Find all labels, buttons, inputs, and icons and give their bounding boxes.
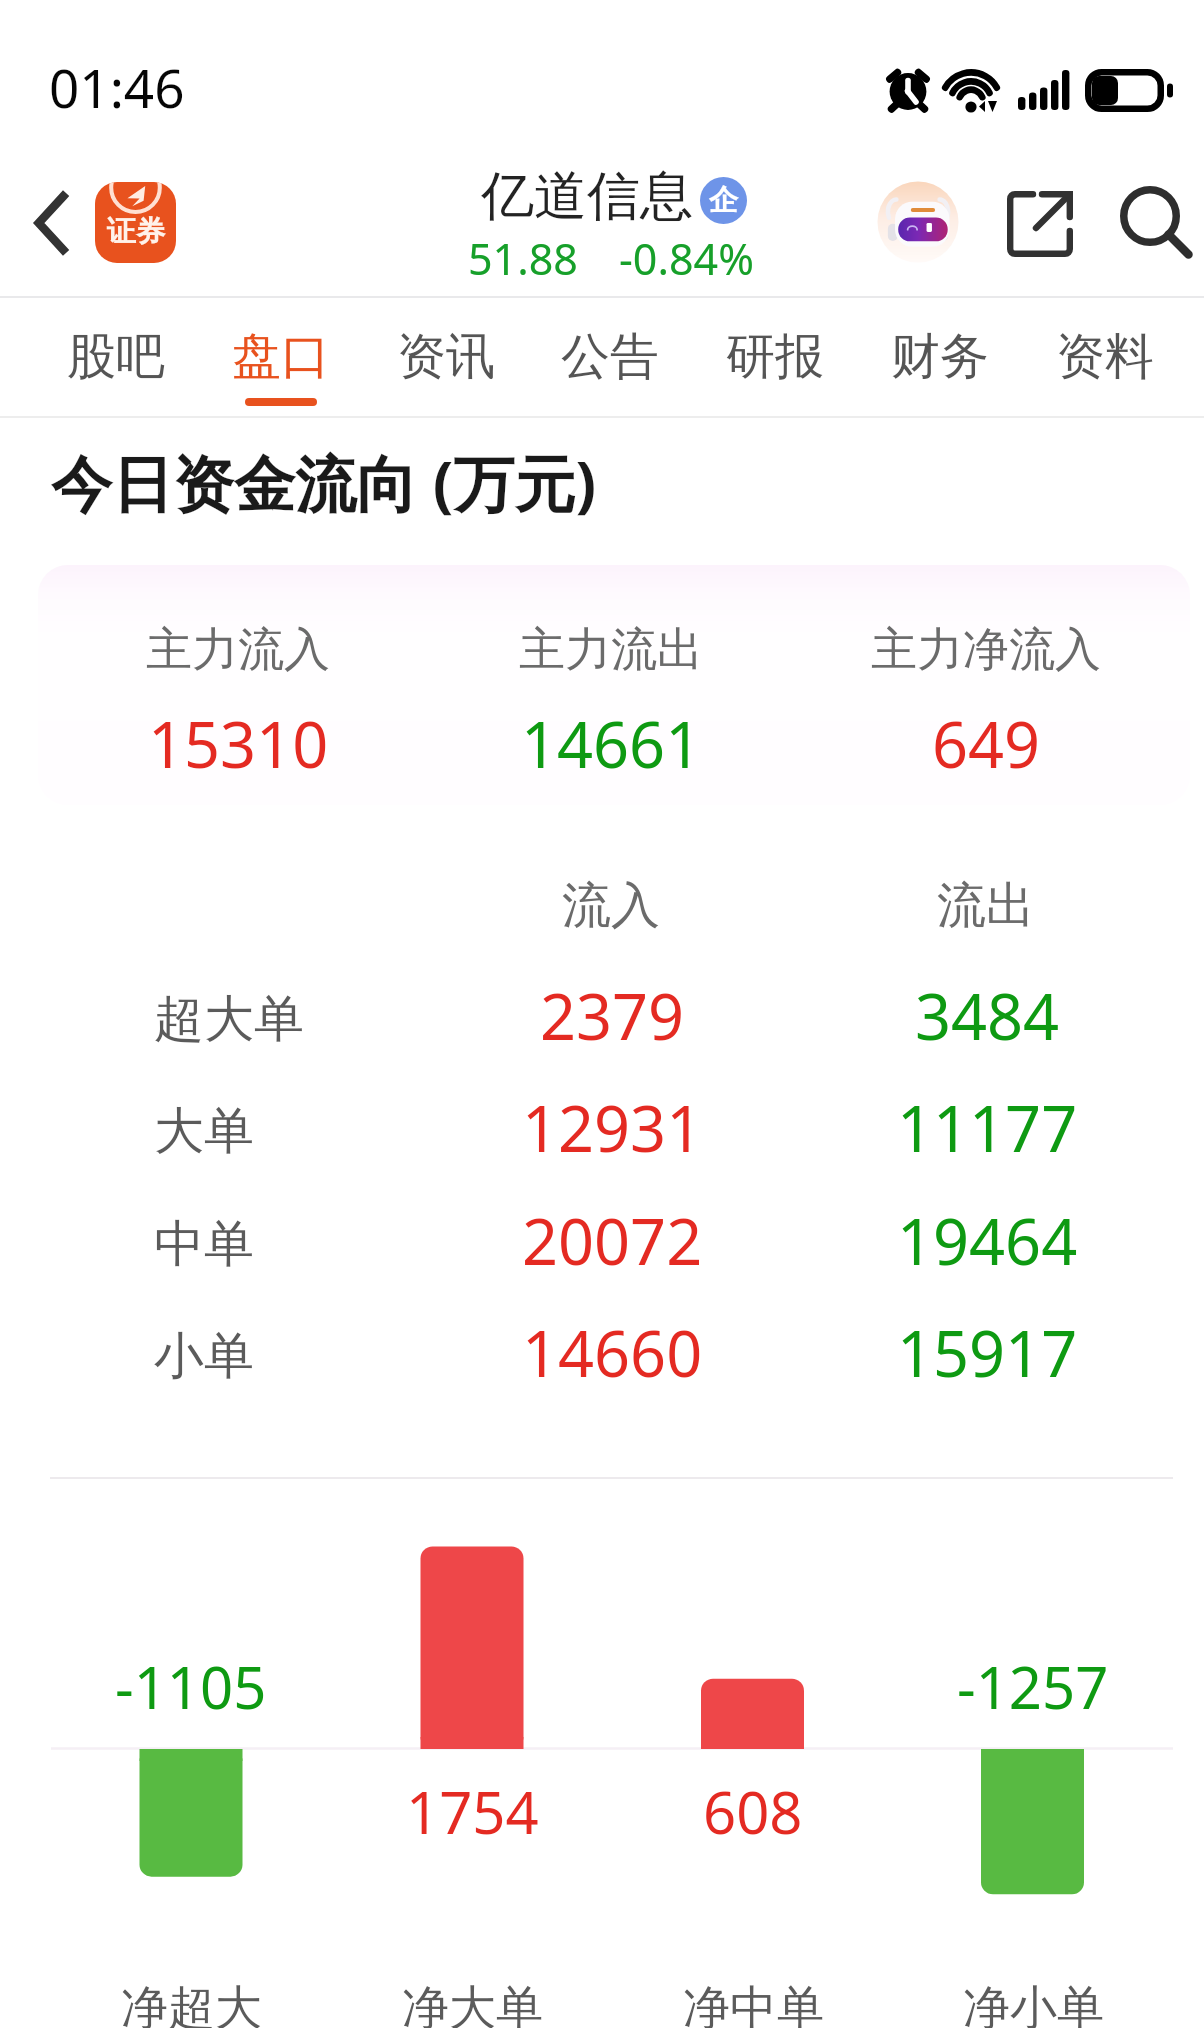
staticText: -1257: [957, 1647, 1109, 1726]
staticText: 649: [932, 701, 1041, 787]
button[interactable]: 资料: [1033, 292, 1177, 414]
staticText: 608: [703, 1772, 803, 1851]
staticText: 3484: [915, 973, 1060, 1059]
staticText: 2379: [540, 973, 685, 1059]
staticText: 主力流出: [519, 621, 703, 679]
staticText: 14660: [522, 1310, 703, 1396]
staticText: -1105: [115, 1647, 267, 1726]
staticText: 15310: [148, 701, 329, 787]
staticText: 盘口: [232, 326, 330, 388]
staticText: 中单: [154, 1213, 254, 1276]
staticText: 12931: [522, 1085, 703, 1171]
button[interactable]: 股吧: [44, 292, 188, 414]
staticText: 净中单: [683, 1979, 824, 2028]
staticText: 资料: [1056, 326, 1154, 388]
button[interactable]: 小单: [0, 1319, 1204, 1431]
button[interactable]: 中单: [0, 1207, 1204, 1319]
staticText: -0.84%: [619, 229, 754, 288]
staticText: 11177: [897, 1085, 1078, 1171]
button[interactable]: 盘口: [209, 292, 353, 414]
staticText: 14661: [521, 701, 702, 787]
staticText: 流出: [937, 875, 1035, 937]
staticText: 净超大: [121, 1979, 262, 2028]
button[interactable]: 资讯: [374, 292, 518, 414]
staticText: 主力净流入: [871, 621, 1101, 679]
staticText: 公告: [561, 326, 659, 388]
staticText: 净小单: [963, 1979, 1104, 2028]
button[interactable]: 研报: [703, 292, 847, 414]
button[interactable]: 公告: [538, 292, 682, 414]
staticText: 亿道信息: [481, 163, 693, 230]
staticText: 1754: [406, 1772, 539, 1851]
staticText: 大单: [154, 1100, 254, 1163]
staticText: 19464: [897, 1198, 1078, 1284]
button[interactable]: 超大单: [0, 982, 1204, 1094]
button[interactable]: Back: [6, 178, 96, 268]
staticText: 财务: [891, 326, 989, 388]
staticText: 今日资金流向 (万元): [51, 441, 597, 524]
staticText: 流入: [562, 875, 660, 937]
staticText: 企: [709, 182, 738, 219]
staticText: 资讯: [397, 326, 495, 388]
button[interactable]: Search: [1111, 177, 1203, 269]
staticText: 超大单: [154, 988, 304, 1051]
staticText: 51.88: [468, 229, 578, 288]
button[interactable]: 大单: [0, 1094, 1204, 1206]
staticText: 股吧: [67, 326, 165, 388]
button[interactable]: 财务: [868, 292, 1012, 414]
staticText: 证券: [107, 213, 165, 250]
button[interactable]: Share: [994, 178, 1086, 270]
button[interactable]: AI assistant: [873, 177, 963, 267]
staticText: 净大单: [402, 1979, 543, 2028]
staticText: 15917: [897, 1310, 1078, 1396]
staticText: 01:46: [49, 51, 185, 123]
button[interactable]: Securities app: [95, 182, 176, 263]
staticText: 20072: [522, 1198, 703, 1284]
staticText: 研报: [726, 326, 824, 388]
staticText: 小单: [154, 1325, 254, 1388]
staticText: 主力流入: [146, 621, 330, 679]
